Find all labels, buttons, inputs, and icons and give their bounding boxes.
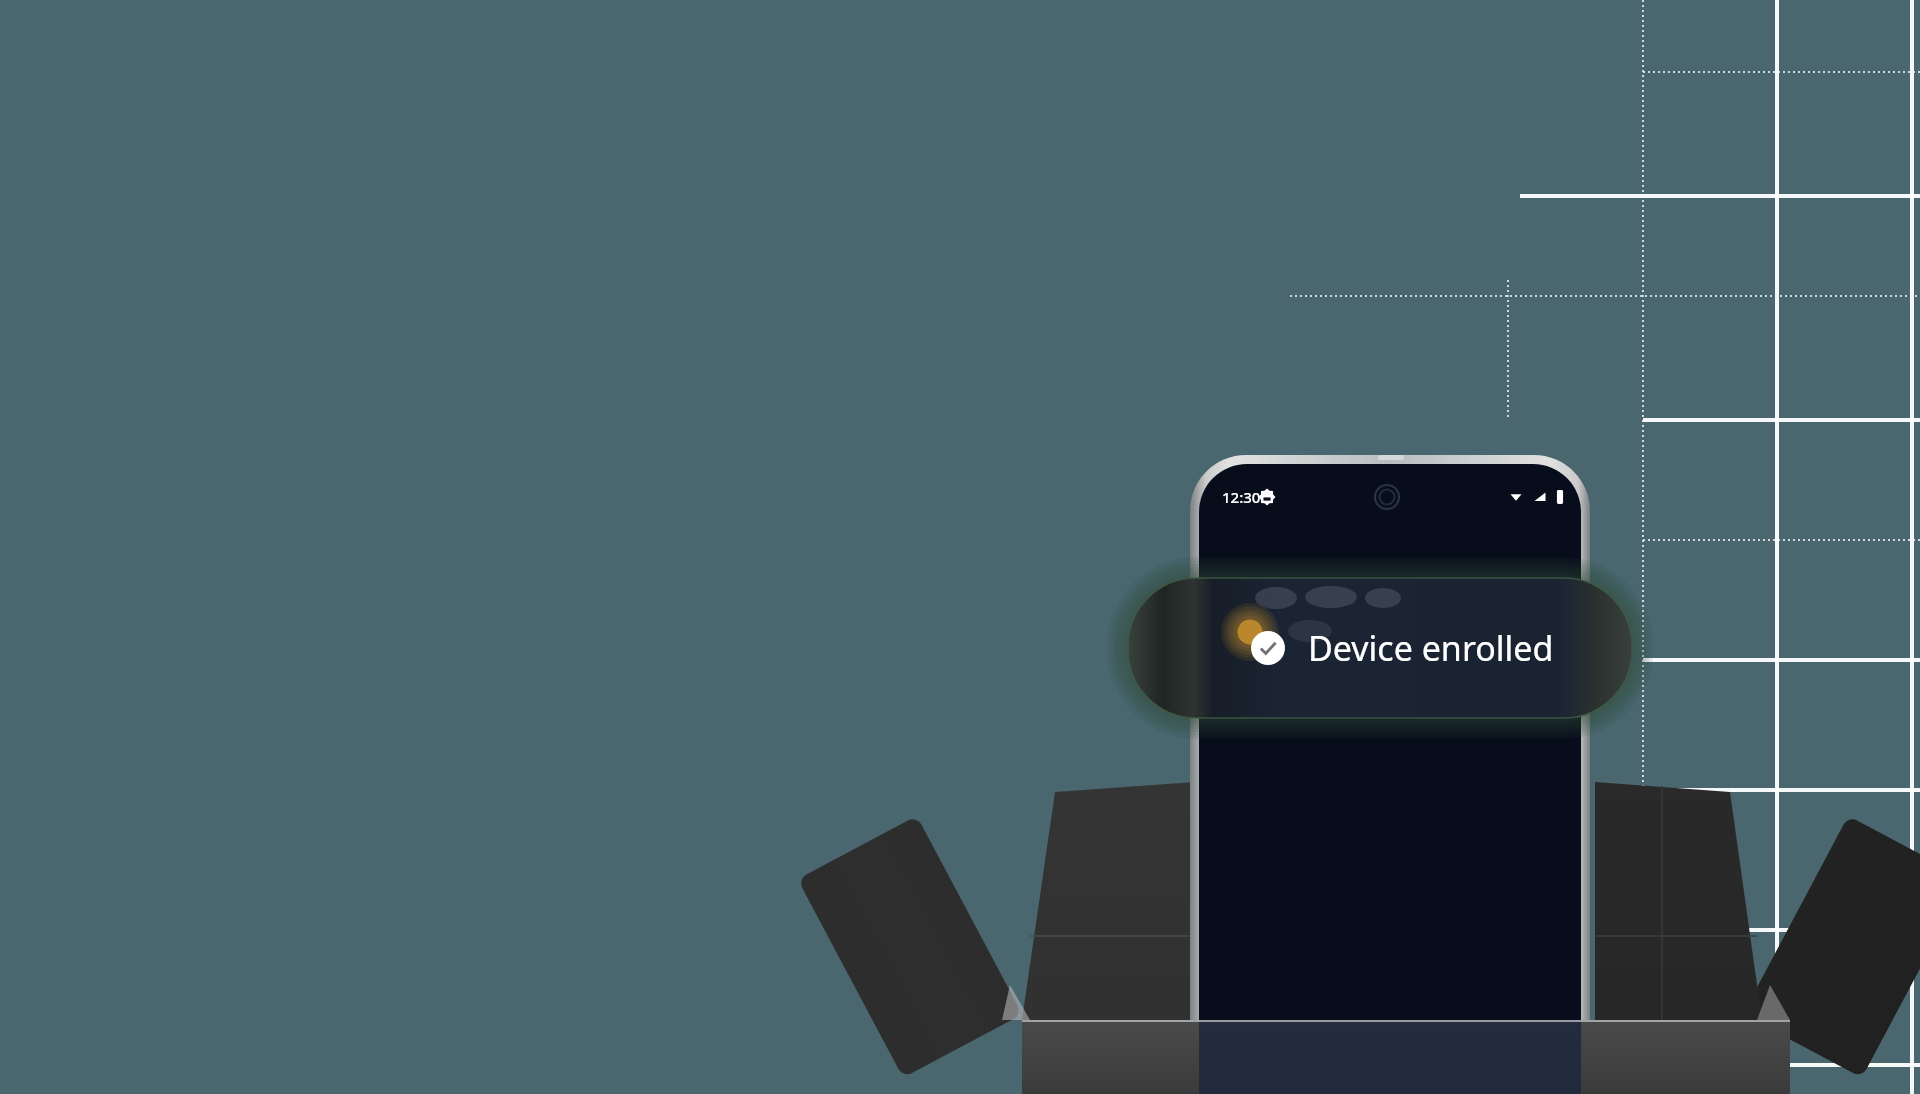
button[interactable]: Device enrollment illustration <box>0 0 1920 1094</box>
